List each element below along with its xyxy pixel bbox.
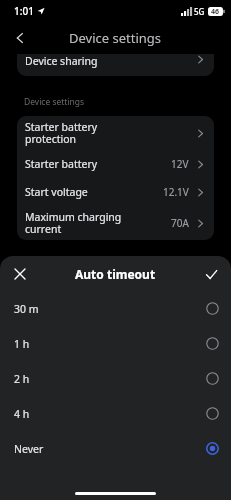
staticText: 70A (171, 216, 189, 230)
staticText: Device settings (24, 96, 85, 108)
staticText: Starter battery protection (25, 120, 195, 146)
button[interactable]: Back (6, 24, 34, 52)
staticText: Auto timeout (75, 266, 156, 282)
staticText: Never (14, 442, 206, 456)
button[interactable]: Maximum charging current (17, 206, 214, 240)
staticText: 1 h (14, 337, 206, 351)
button[interactable]: Confirm (197, 260, 225, 288)
button[interactable]: 30 m (0, 291, 231, 326)
staticText: 2 h (14, 372, 206, 386)
button[interactable]: 1 h (0, 326, 231, 361)
staticText: Device settings (69, 29, 162, 47)
staticText: Maximum charging current (25, 210, 171, 236)
staticText: 12.1V (163, 185, 189, 199)
staticText: 46 (211, 7, 220, 16)
staticText: 30 m (14, 302, 206, 316)
button[interactable]: Device sharing (17, 54, 214, 76)
button[interactable]: Start voltage (17, 178, 214, 206)
button[interactable]: Starter battery (17, 150, 214, 178)
staticText: 12V (171, 157, 189, 171)
staticText: 5G (194, 6, 205, 17)
staticText: Device sharing (25, 54, 98, 68)
button[interactable]: Never (0, 431, 231, 466)
button[interactable]: 2 h (0, 361, 231, 396)
staticText: 1:01 (14, 4, 34, 18)
staticText: Start voltage (25, 185, 163, 199)
staticText: Starter battery (25, 157, 171, 171)
button[interactable]: Starter battery protection (17, 116, 214, 150)
button[interactable]: Close (6, 260, 34, 288)
staticText: 4 h (14, 407, 206, 421)
button[interactable]: 4 h (0, 396, 231, 431)
